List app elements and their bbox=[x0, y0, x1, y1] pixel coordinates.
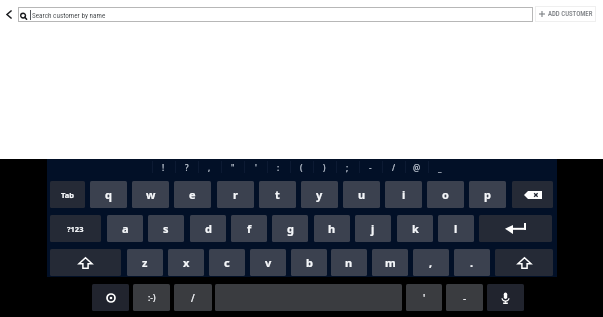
staticText: h bbox=[328, 221, 336, 236]
staticText: a bbox=[122, 221, 129, 236]
staticText: q bbox=[105, 187, 112, 202]
staticText: f bbox=[247, 221, 252, 236]
button[interactable]: h bbox=[314, 215, 350, 242]
button[interactable]: ?123 bbox=[50, 215, 101, 242]
button[interactable]: Enter bbox=[479, 215, 552, 242]
button[interactable]: t bbox=[259, 181, 296, 208]
button[interactable]: m bbox=[372, 249, 408, 276]
staticText: p bbox=[484, 187, 491, 202]
button[interactable]: ) bbox=[313, 158, 336, 176]
button[interactable]: b bbox=[291, 249, 327, 276]
staticText: " bbox=[231, 162, 235, 173]
staticText: Search customer by name bbox=[32, 11, 106, 19]
staticText: r bbox=[233, 187, 238, 202]
staticText: j bbox=[371, 221, 375, 236]
button[interactable]: Voice input bbox=[487, 284, 524, 311]
button[interactable]: a bbox=[107, 215, 143, 242]
staticText: g bbox=[287, 221, 294, 236]
button[interactable]: - bbox=[446, 284, 483, 311]
button[interactable]: " bbox=[221, 158, 244, 176]
button[interactable]: j bbox=[355, 215, 391, 242]
staticText: n bbox=[345, 255, 353, 270]
staticText: x bbox=[183, 255, 190, 270]
button[interactable]: Back bbox=[0, 2, 17, 26]
button[interactable]: / bbox=[382, 158, 405, 176]
button[interactable]: Search customer by name bbox=[18, 7, 533, 22]
button[interactable]: n bbox=[331, 249, 367, 276]
button[interactable]: Shift bbox=[50, 249, 121, 276]
button[interactable]: e bbox=[174, 181, 211, 208]
staticText: v bbox=[265, 255, 272, 270]
button[interactable]: - bbox=[359, 158, 382, 176]
button[interactable]: ( bbox=[290, 158, 313, 176]
button[interactable]: ' bbox=[244, 158, 267, 176]
button[interactable]: q bbox=[90, 181, 127, 208]
staticText: : bbox=[277, 162, 280, 173]
button[interactable]: :-) bbox=[133, 284, 170, 311]
staticText: w bbox=[146, 187, 156, 202]
staticText: o bbox=[442, 187, 449, 202]
staticText: / bbox=[191, 291, 195, 305]
button[interactable]: , bbox=[413, 249, 449, 276]
staticText: i bbox=[402, 187, 406, 202]
button[interactable]: d bbox=[190, 215, 226, 242]
button[interactable]: ? bbox=[175, 158, 198, 176]
staticText: y bbox=[316, 187, 323, 202]
button[interactable]: . bbox=[454, 249, 490, 276]
staticText: s bbox=[163, 221, 169, 236]
staticText: u bbox=[358, 187, 366, 202]
staticText: - bbox=[463, 291, 467, 305]
button[interactable]: / bbox=[174, 284, 212, 311]
button[interactable]: ' bbox=[406, 284, 442, 311]
button[interactable]: c bbox=[209, 249, 245, 276]
button[interactable]: s bbox=[148, 215, 184, 242]
button[interactable]: u bbox=[343, 181, 380, 208]
staticText: b bbox=[306, 255, 313, 270]
button[interactable]: Keyboard settings bbox=[92, 284, 129, 311]
staticText: m bbox=[385, 255, 396, 270]
button[interactable]: y bbox=[301, 181, 338, 208]
button[interactable]: i bbox=[385, 181, 422, 208]
staticText: Tab bbox=[61, 190, 74, 200]
staticText: d bbox=[205, 221, 212, 236]
button[interactable]: x bbox=[168, 249, 204, 276]
staticText: z bbox=[142, 255, 148, 270]
button[interactable]: g bbox=[272, 215, 308, 242]
staticText: :-) bbox=[148, 292, 156, 304]
staticText: @ bbox=[413, 162, 421, 173]
staticText: c bbox=[224, 255, 230, 270]
button[interactable]: o bbox=[427, 181, 464, 208]
button[interactable]: l bbox=[438, 215, 474, 242]
button[interactable]: v bbox=[250, 249, 286, 276]
button[interactable]: ; bbox=[336, 158, 359, 176]
button[interactable]: : bbox=[267, 158, 290, 176]
staticText: , bbox=[208, 162, 211, 173]
button[interactable]: ! bbox=[152, 158, 175, 176]
staticText: ? bbox=[185, 162, 189, 173]
button[interactable]: , bbox=[198, 158, 221, 176]
button[interactable]: r bbox=[217, 181, 254, 208]
staticText: ) bbox=[323, 162, 326, 173]
staticText: , bbox=[429, 255, 433, 270]
button[interactable]: Tab bbox=[50, 181, 85, 208]
staticText: ADD CUSTOMER bbox=[548, 10, 593, 18]
staticText: ( bbox=[300, 162, 303, 173]
staticText: ?123 bbox=[67, 224, 84, 234]
staticText: ; bbox=[346, 162, 349, 173]
button[interactable]: ADD CUSTOMER bbox=[535, 6, 596, 22]
staticText: / bbox=[392, 162, 396, 173]
button[interactable]: f bbox=[231, 215, 267, 242]
button[interactable]: p bbox=[469, 181, 506, 208]
button[interactable]: Shift bbox=[495, 249, 553, 276]
button[interactable]: _ bbox=[428, 158, 451, 176]
button[interactable]: w bbox=[132, 181, 169, 208]
staticText: ! bbox=[162, 162, 165, 173]
staticText: ' bbox=[255, 162, 257, 173]
button[interactable]: @ bbox=[405, 158, 428, 176]
button[interactable]: z bbox=[127, 249, 163, 276]
button[interactable]: k bbox=[397, 215, 433, 242]
button[interactable]: Backspace bbox=[512, 181, 553, 208]
staticText: k bbox=[412, 221, 419, 236]
staticText: l bbox=[454, 221, 458, 236]
